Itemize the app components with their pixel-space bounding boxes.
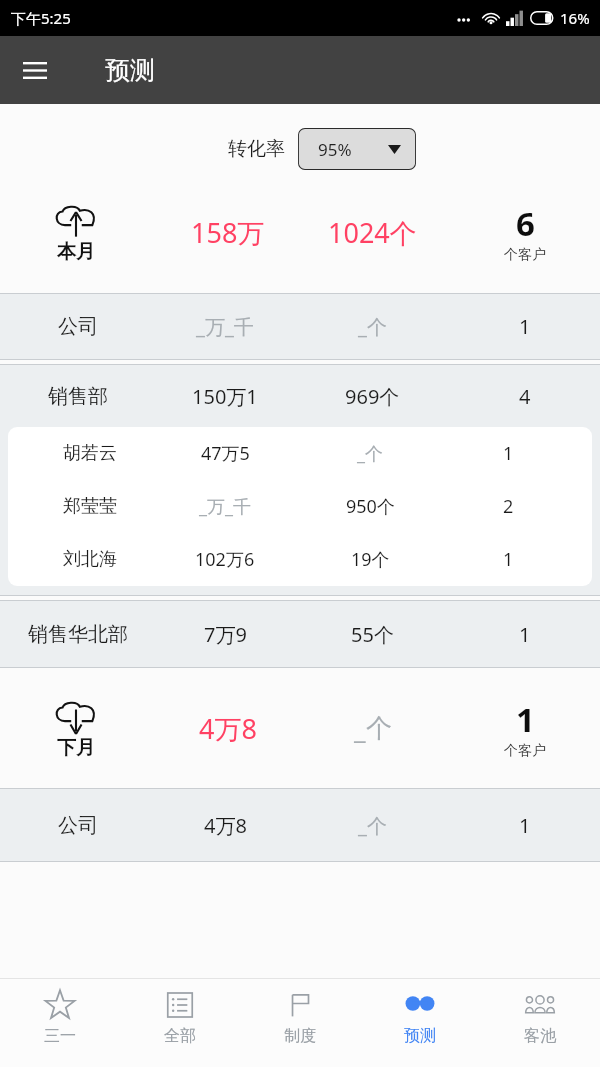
staticText: 16% <box>560 8 590 28</box>
staticText: 158万 <box>191 214 265 251</box>
staticText: 102万6 <box>195 547 255 572</box>
button[interactable]: 公司 <box>0 789 600 861</box>
button[interactable]: 95% <box>298 128 416 170</box>
button[interactable]: 制度 <box>240 990 360 1067</box>
staticText: 1 <box>503 547 514 572</box>
staticText: _ <box>354 711 366 746</box>
button[interactable]: 下月 <box>0 680 600 776</box>
staticText: 1 <box>516 697 535 742</box>
staticText: 个客户 <box>504 742 546 760</box>
staticText: 7万9 <box>204 621 247 648</box>
staticText: 4万8 <box>204 812 247 839</box>
button[interactable]: 销售华北部 <box>0 601 600 667</box>
staticText: 150万1 <box>192 383 258 410</box>
staticText: 客池 <box>524 1026 556 1046</box>
staticText: 6 <box>516 201 535 246</box>
button[interactable]: 三一 <box>0 990 120 1067</box>
staticText: 全部 <box>164 1026 196 1046</box>
staticText: 个 <box>366 712 392 745</box>
staticText: 4万8 <box>199 710 257 747</box>
staticText: 销售华北部 <box>28 622 128 647</box>
staticText: 公司 <box>58 314 98 339</box>
staticText: 1 <box>519 313 531 340</box>
staticText: 4 <box>519 383 531 410</box>
staticText: 制度 <box>284 1026 316 1046</box>
staticText: 本月 <box>57 240 95 264</box>
staticText: 1 <box>519 621 531 648</box>
staticText: _个 <box>358 313 387 340</box>
staticText: 1 <box>503 441 514 466</box>
staticText: 950个 <box>346 494 395 519</box>
staticText: 47万5 <box>201 441 250 466</box>
staticText: 1 <box>519 812 531 839</box>
staticText: 下月 <box>57 736 95 760</box>
staticText: _万_千 <box>199 494 251 519</box>
staticText: 胡若云 <box>63 442 117 465</box>
staticText: _个 <box>358 812 387 839</box>
staticText: 969个 <box>345 383 400 410</box>
staticText: 三一 <box>44 1026 76 1046</box>
button[interactable]: 全部 <box>120 990 240 1067</box>
button[interactable]: 胡若云 <box>8 427 592 480</box>
staticText: 19个 <box>351 547 390 572</box>
button[interactable]: Menu <box>12 47 58 93</box>
staticText: 郑莹莹 <box>63 495 117 518</box>
button[interactable]: 客池 <box>480 990 600 1067</box>
button[interactable]: 郑莹莹 <box>8 480 592 533</box>
staticText: 下午5:25 <box>11 8 71 28</box>
staticText: 2 <box>503 494 514 519</box>
staticText: 个客户 <box>504 246 546 264</box>
staticText: 销售部 <box>48 384 108 409</box>
staticText: 55个 <box>351 621 394 648</box>
button[interactable]: 预测 <box>360 990 480 1067</box>
staticText: 公司 <box>58 813 98 838</box>
staticText: 转化率 <box>228 137 285 161</box>
button[interactable]: 刘北海 <box>8 533 592 586</box>
staticText: 1024个 <box>328 214 417 251</box>
staticText: _个 <box>357 441 383 466</box>
staticText: _万_千 <box>196 313 254 340</box>
staticText: 预测 <box>105 55 155 86</box>
button[interactable]: 本月 <box>0 184 600 280</box>
staticText: 刘北海 <box>63 548 117 571</box>
staticText: 95% <box>318 138 352 161</box>
staticText: 预测 <box>404 1026 436 1046</box>
button[interactable]: 公司 <box>0 294 600 359</box>
